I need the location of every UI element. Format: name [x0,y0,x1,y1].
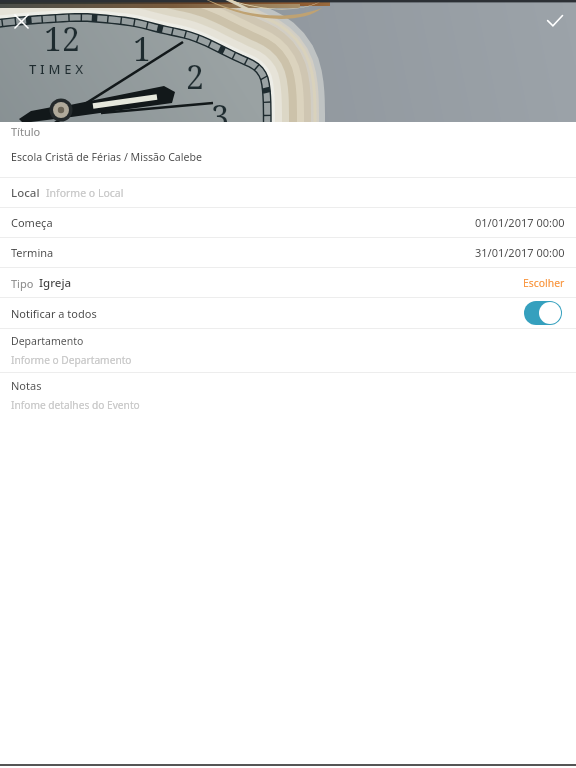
staticText: Começa [11,215,53,230]
button[interactable]: Salvar [534,0,576,42]
button[interactable]: Local [0,178,576,207]
staticText: 01/01/2017 00:00 [475,215,565,230]
staticText: Escolher [523,276,565,290]
button[interactable]: Notas [0,373,576,416]
staticText: Tipo [11,276,34,291]
staticText: 3 [211,95,229,122]
staticText: TIMEX [29,60,88,78]
staticText: Termina [11,245,54,260]
staticText: Informe o Local [46,186,124,200]
staticText: Infome detalhes do Evento [11,398,140,412]
staticText: Departamento [11,334,84,348]
staticText: 31/01/2017 00:00 [475,245,565,260]
staticText: Informe o Departamento [11,353,132,367]
staticText: Notificar a todos [11,306,97,321]
button[interactable]: Fechar [0,0,42,42]
staticText: Notas [11,378,42,393]
staticText: 2 [186,55,204,99]
button[interactable]: Tipo [0,268,576,297]
button[interactable]: Notificar a todos [0,298,576,328]
staticText: Escola Cristã de Férias / Missão Calebe [11,150,203,164]
staticText: Local [11,185,40,201]
button[interactable]: Começa [0,208,576,237]
button[interactable]: Departamento [0,329,576,372]
button[interactable]: Título [0,122,576,177]
staticText: Igreja [39,275,72,291]
button[interactable]: Notificar a todos [524,301,562,325]
staticText: Título [11,124,41,139]
staticText: 12 [44,17,80,61]
button[interactable]: Termina [0,238,576,267]
staticText: 1 [133,27,151,71]
